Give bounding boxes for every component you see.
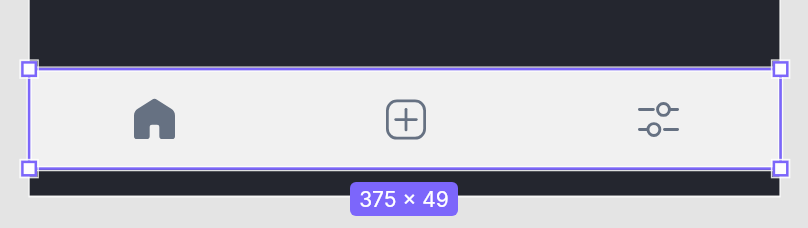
button[interactable]: Settings: [530, 70, 780, 169]
button[interactable]: Add: [280, 70, 530, 169]
staticText: 375 × 49: [359, 187, 449, 212]
button[interactable]: Home: [30, 70, 280, 169]
